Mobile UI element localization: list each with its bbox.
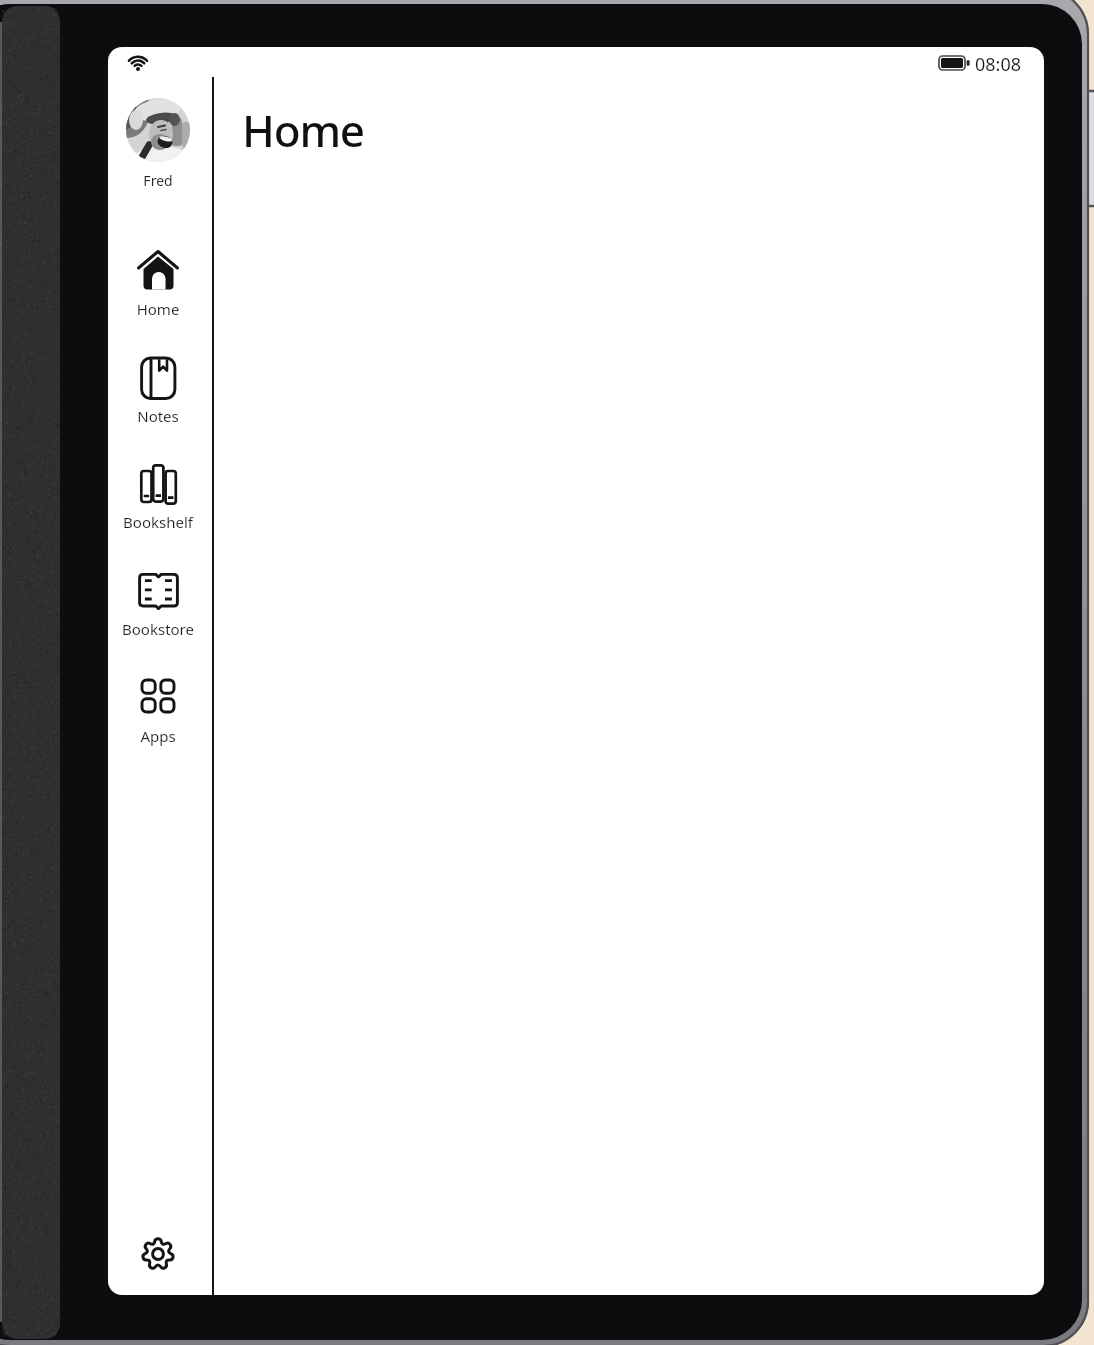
button[interactable] <box>126 1222 190 1286</box>
button[interactable]: Fred <box>108 92 208 197</box>
staticText: Home <box>108 299 208 319</box>
staticText: 08:08 <box>975 52 1022 77</box>
button[interactable]: Bookstore <box>108 565 208 643</box>
staticText: Bookshelf <box>108 512 208 532</box>
button[interactable]: Apps <box>108 672 208 750</box>
button[interactable]: Home <box>108 245 208 323</box>
staticText: Home <box>242 100 364 160</box>
staticText: Bookstore <box>108 619 208 639</box>
staticText: Fred <box>108 171 208 190</box>
staticText: Apps <box>108 726 208 746</box>
button[interactable]: Notes <box>108 352 208 430</box>
staticText: Notes <box>108 406 208 426</box>
button[interactable]: Bookshelf <box>108 458 208 536</box>
